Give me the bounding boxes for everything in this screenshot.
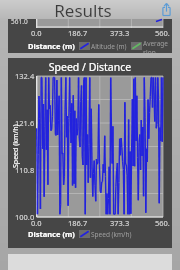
staticText: 373.3 [110,28,130,38]
staticText: Altitude (m) [91,42,127,51]
staticText: Speed (km/h) [11,124,21,168]
staticText: 186.7 [68,28,88,38]
button[interactable]: 561.0 [8,19,172,53]
staticText: 186.7 [68,218,88,228]
staticText: Distance (m) [28,41,75,51]
staticText: Average slop [143,39,172,53]
staticText: Results [54,0,112,18]
button[interactable]: Share [159,2,174,17]
staticText: 373.3 [110,218,130,228]
staticText: 0.0 [31,218,42,228]
staticText: 560. [155,218,170,228]
staticText: 560. [155,28,170,38]
staticText: Distance (m) [28,229,75,239]
staticText: 132.4 [15,71,35,81]
button[interactable]: Speed / Distance [8,58,172,248]
staticText: 121.6 [15,118,35,128]
staticText: 561.0 [11,17,28,26]
staticText: 0.0 [31,28,42,38]
staticText: 100.0 [15,212,35,222]
staticText: 110.8 [15,165,35,175]
staticText: Speed (km/h) [91,230,132,239]
staticText: Speed / Distance [8,60,172,74]
